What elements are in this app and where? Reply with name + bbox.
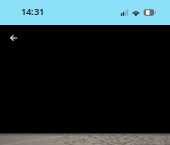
button[interactable]: Back <box>0 25 27 51</box>
staticText: 14:31 <box>21 5 44 18</box>
